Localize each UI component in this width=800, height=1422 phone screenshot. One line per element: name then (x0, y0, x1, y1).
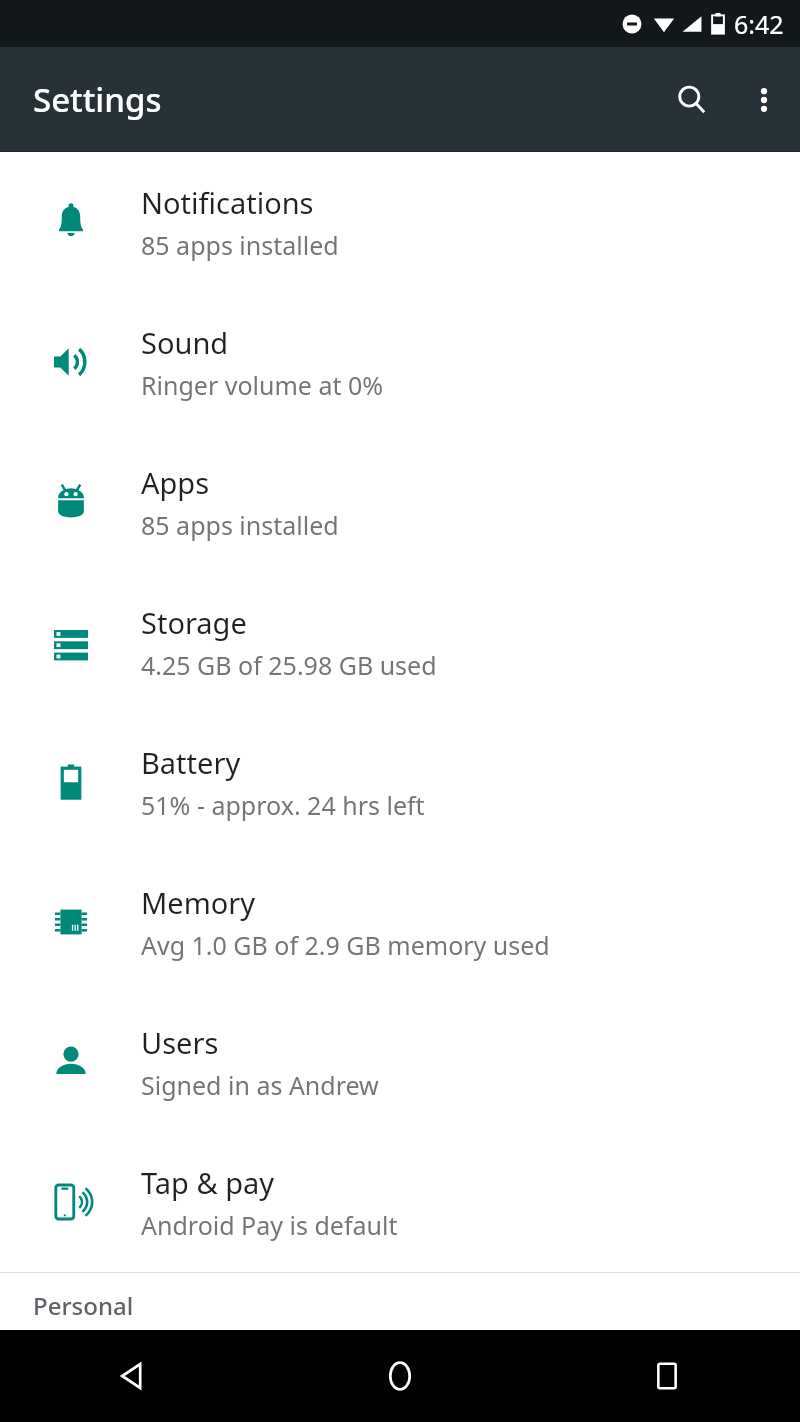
staticText: Users (141, 1023, 219, 1062)
staticText: 85 apps installed (141, 228, 339, 262)
staticText: Storage (141, 603, 247, 642)
staticText: 4.25 GB of 25.98 GB used (141, 648, 437, 682)
button[interactable]: Users (0, 992, 800, 1132)
staticText: Notifications (141, 183, 314, 222)
button[interactable]: Battery (0, 712, 800, 852)
staticText: 6:42 (734, 7, 784, 41)
staticText: Battery (141, 743, 241, 782)
staticText: Signed in as Andrew (141, 1068, 379, 1102)
button[interactable]: Memory (0, 852, 800, 992)
staticText: Memory (141, 883, 256, 922)
button[interactable]: Tap & pay (0, 1132, 800, 1272)
staticText: Settings (33, 77, 162, 122)
button[interactable]: Search (656, 64, 728, 136)
staticText: 85 apps installed (141, 508, 339, 542)
button[interactable]: Sound (0, 292, 800, 432)
staticText: Personal (33, 1289, 134, 1322)
staticText: 51% - approx. 24 hrs left (141, 788, 425, 822)
button[interactable]: More options (728, 64, 800, 136)
staticText: Ringer volume at 0% (141, 368, 384, 402)
button[interactable]: Notifications (0, 152, 800, 292)
button[interactable]: Back (0, 1330, 266, 1422)
staticText: Apps (141, 463, 210, 502)
staticText: Avg 1.0 GB of 2.9 GB memory used (141, 928, 550, 962)
button[interactable]: Storage (0, 572, 800, 712)
button[interactable]: Recent apps (533, 1330, 800, 1422)
staticText: Android Pay is default (141, 1208, 398, 1242)
button[interactable]: Home (266, 1330, 533, 1422)
staticText: Tap & pay (141, 1163, 275, 1202)
button[interactable]: Apps (0, 432, 800, 572)
staticText: Sound (141, 323, 229, 362)
